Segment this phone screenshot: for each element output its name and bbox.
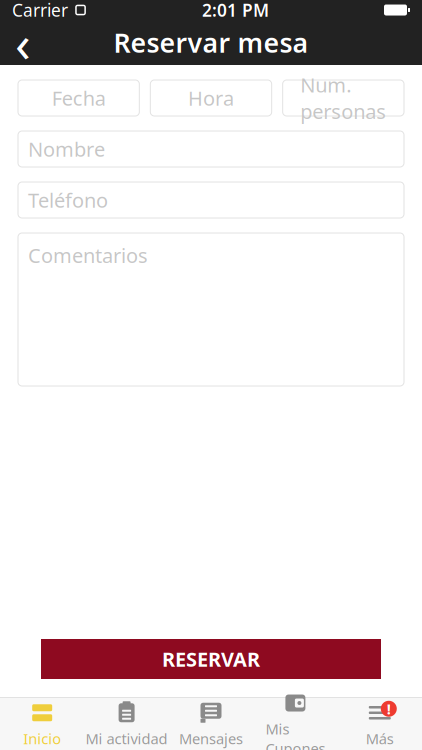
button[interactable]: Inicio	[0, 695, 84, 750]
button[interactable]: Teléfono	[18, 182, 404, 218]
staticText: RESERVAR	[162, 646, 260, 672]
staticText: Fecha	[52, 85, 106, 111]
button[interactable]: Mensajes	[169, 695, 253, 750]
button[interactable]: RESERVAR	[41, 639, 381, 679]
staticText: Mis Cupones	[265, 719, 325, 750]
button[interactable]: Nombre	[18, 131, 404, 167]
button[interactable]: Num. personas	[283, 80, 404, 116]
staticText: Comentarios	[28, 242, 148, 269]
staticText: !	[387, 699, 391, 718]
staticText: Num. personas	[300, 71, 386, 124]
staticText: ‹	[15, 9, 31, 76]
staticText: Inicio	[23, 729, 61, 748]
staticText: Mensajes	[179, 729, 243, 748]
button[interactable]: !	[338, 695, 422, 750]
button[interactable]: Fecha	[18, 80, 139, 116]
staticText: Hora	[188, 85, 234, 111]
staticText: Teléfono	[28, 187, 108, 213]
staticText: Reservar mesa	[113, 25, 308, 60]
staticText: Mi actividad	[86, 729, 168, 748]
button[interactable]: Mi actividad	[84, 695, 169, 750]
staticText: Nombre	[28, 136, 105, 162]
staticText: Más	[366, 729, 394, 748]
button[interactable]: Hora	[150, 80, 272, 116]
staticText: Carrier	[12, 0, 68, 21]
staticText: 2:01 PM	[202, 0, 269, 21]
button[interactable]: Comentarios	[18, 233, 404, 386]
button[interactable]: Back	[0, 20, 46, 64]
button[interactable]: Mis Cupones	[253, 685, 338, 750]
